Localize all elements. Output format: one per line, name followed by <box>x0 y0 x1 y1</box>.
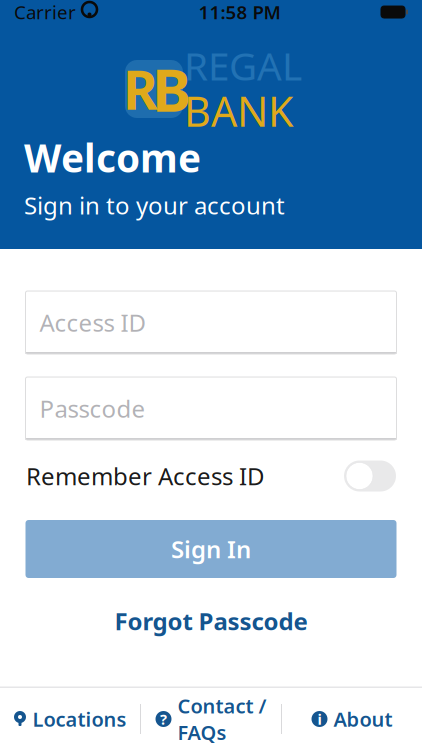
staticText: Remember Access ID <box>26 460 265 492</box>
staticText: Carrier <box>14 0 76 24</box>
staticText: B <box>152 50 191 128</box>
staticText: ? <box>160 709 167 729</box>
button[interactable]: Sign In <box>25 520 396 578</box>
staticText: 11:58 PM <box>198 0 280 24</box>
staticText: Sign in to your account <box>24 189 285 221</box>
button[interactable]: ? <box>141 688 281 750</box>
button[interactable]: Forgot Passcode <box>94 604 327 638</box>
staticText: About <box>333 706 392 732</box>
staticText: Contact / FAQs <box>177 692 266 745</box>
button[interactable]: Locations <box>0 688 140 750</box>
staticText: REGAL <box>184 40 302 91</box>
staticText: BANK <box>184 83 294 138</box>
staticText: Welcome <box>24 132 201 183</box>
button[interactable]: i <box>282 688 422 750</box>
staticText: Sign In <box>171 533 251 565</box>
button[interactable]: Remember Access ID <box>0 450 422 502</box>
staticText: R <box>123 54 158 124</box>
staticText: Forgot Passcode <box>114 605 307 637</box>
staticText: Passcode <box>39 393 145 424</box>
staticText: Access ID <box>39 307 146 338</box>
staticText: Locations <box>32 706 126 732</box>
staticText: i <box>317 709 321 729</box>
